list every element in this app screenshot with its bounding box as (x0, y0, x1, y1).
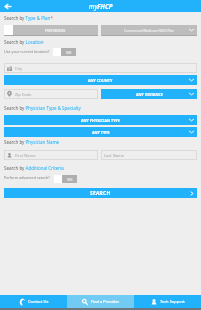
button[interactable]: PROVIDERS (4, 25, 98, 35)
staticText: Search by Additional Criteria (4, 165, 64, 171)
button[interactable]: Toggle: No (54, 175, 77, 183)
button[interactable]: Commercial Medicare HMO Plan (101, 25, 197, 35)
button[interactable]: Last Name (104, 150, 197, 160)
staticText: Search by Physician Type & Specialty (4, 105, 81, 111)
staticText: Commercial Medicare HMO Plan (124, 28, 175, 32)
button[interactable]: ANY PHYSICIAN TYPE (4, 115, 197, 125)
staticText: Search by Physician Name (4, 139, 60, 145)
button[interactable]: ANY COUNTY (4, 75, 197, 85)
staticText: ANY COUNTY (88, 78, 113, 83)
staticText: ANY TYPE (92, 130, 110, 135)
staticText: NO (66, 50, 72, 55)
button[interactable]: Back (0, 0, 14, 12)
staticText: PROVIDERS (45, 28, 66, 33)
staticText: First Name (15, 153, 36, 158)
button[interactable]: Find a Provider (67, 295, 134, 308)
button[interactable]: Toggle: No (53, 48, 76, 56)
staticText: Perform advanced search? (4, 175, 50, 180)
button[interactable]: ANY DISTANCE (101, 89, 197, 99)
button[interactable]: City (7, 63, 197, 73)
button[interactable]: Zip Code (7, 89, 98, 99)
staticText: City (15, 66, 23, 71)
staticText: Use your current location? (4, 49, 50, 54)
staticText: Last Name (104, 153, 125, 158)
staticText: Tech Support (160, 299, 185, 304)
button[interactable]: ANY TYPE (4, 127, 197, 137)
staticText: Find a Provider (91, 299, 120, 304)
staticText: Contact Us (28, 299, 49, 304)
staticText: myFHCP (89, 2, 113, 10)
button[interactable]: SEARCH (4, 188, 197, 198)
staticText: Zip Code (15, 92, 32, 97)
staticText: Search by Type & Plan* (4, 15, 53, 21)
button[interactable]: First Name (7, 150, 98, 160)
staticText: NO (67, 177, 73, 182)
staticText: SEARCH (90, 190, 111, 197)
staticText: ANY PHYSICIAN TYPE (81, 118, 120, 123)
button[interactable]: Contact Us (0, 295, 67, 308)
staticText: ANY DISTANCE (136, 92, 163, 97)
button[interactable]: Tech Support (134, 295, 201, 308)
staticText: Search by Location (4, 39, 44, 45)
